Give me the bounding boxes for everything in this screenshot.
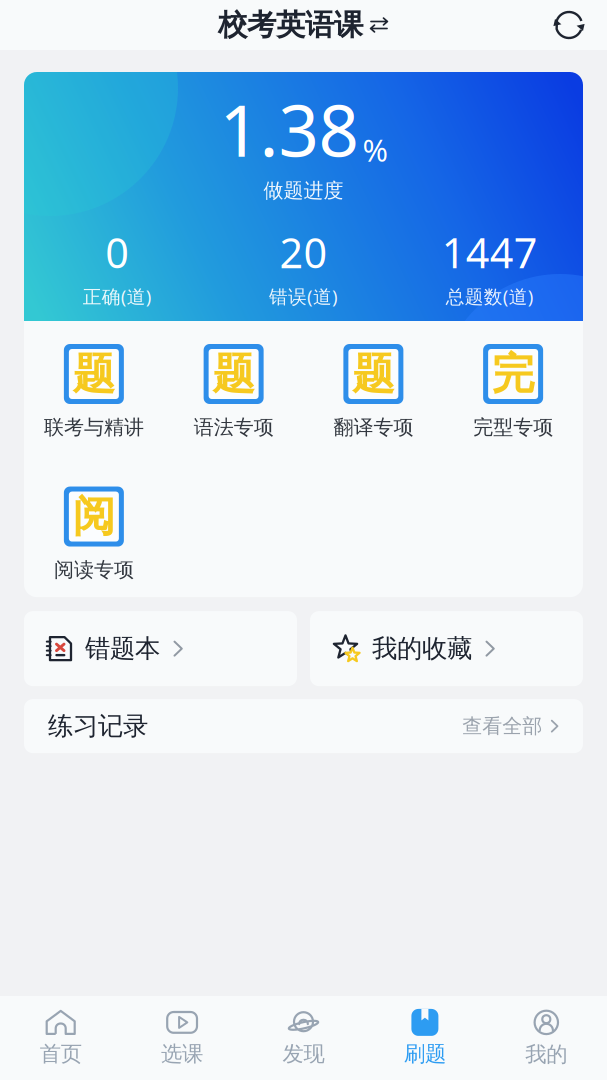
staticText: 错误(道) (269, 284, 338, 309)
staticText: 练习记录 (48, 711, 148, 742)
button[interactable]: 题 (24, 344, 164, 440)
button[interactable]: 发现 (243, 1009, 364, 1067)
staticText: 做题进度 (263, 178, 343, 203)
staticText: 校考英语课 (218, 7, 363, 43)
button[interactable]: 选课 (121, 1009, 243, 1067)
staticText: 我的 (525, 1041, 567, 1068)
staticText: 查看全部 (462, 714, 542, 738)
staticText: 阅读专项 (54, 558, 134, 582)
staticText: 1447 (442, 225, 538, 280)
button[interactable]: 题 (164, 344, 304, 440)
staticText: 0 (105, 225, 129, 280)
staticText: 联考与精讲 (44, 415, 144, 440)
staticText: 选课 (161, 1041, 203, 1067)
staticText: 完 (492, 348, 535, 400)
staticText: 我的收藏 (372, 633, 472, 664)
staticText: 刷题 (404, 1041, 446, 1067)
staticText: 题 (212, 348, 255, 400)
button[interactable]: Refresh (545, 1, 593, 49)
button[interactable]: 题 (303, 344, 443, 440)
staticText: % (362, 130, 387, 170)
button[interactable]: 阅 (24, 487, 164, 582)
button[interactable]: 错题本 (24, 611, 297, 686)
staticText: 完型专项 (473, 415, 553, 440)
button[interactable]: 我的 (486, 1008, 607, 1068)
staticText: 发现 (282, 1041, 324, 1067)
staticText: 题 (72, 348, 115, 400)
staticText: 首页 (40, 1041, 82, 1067)
staticText: 翻译专项 (333, 415, 413, 440)
button[interactable]: 首页 (0, 1009, 121, 1067)
staticText: 1.38 (219, 82, 358, 176)
staticText: 语法专项 (194, 415, 274, 440)
staticText: 20 (279, 225, 327, 280)
staticText: 错题本 (85, 633, 160, 664)
staticText: 总题数(道) (446, 284, 534, 309)
staticText: 阅 (72, 490, 115, 543)
button[interactable]: 完 (443, 344, 583, 440)
button[interactable]: 练习记录 (24, 699, 583, 753)
staticText: 正确(道) (83, 284, 152, 309)
button[interactable]: 刷题 (364, 1009, 486, 1067)
staticText: 题 (352, 348, 395, 400)
button[interactable]: 我的收藏 (310, 611, 583, 686)
